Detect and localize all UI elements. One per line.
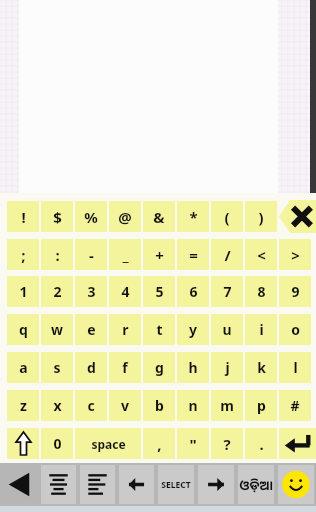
staticText: < <box>257 245 266 265</box>
button[interactable]: Enter <box>279 428 316 459</box>
staticText: b <box>155 396 164 415</box>
button[interactable]: < <box>245 239 277 270</box>
button[interactable]: q <box>7 314 39 345</box>
staticText: w <box>51 320 63 339</box>
button[interactable]: 7 <box>211 276 243 307</box>
button[interactable]: _ <box>109 239 141 270</box>
button[interactable]: c <box>75 390 107 421</box>
staticText: x <box>53 396 62 415</box>
button[interactable]: ଓଡ଼ିଆ <box>238 465 274 504</box>
button[interactable]: 0 <box>41 428 73 459</box>
button[interactable]: " <box>177 428 209 459</box>
button[interactable]: u <box>211 314 243 345</box>
button[interactable]: z <box>7 390 39 421</box>
button[interactable]: $ <box>41 201 73 232</box>
button[interactable]: w <box>41 314 73 345</box>
button[interactable]: + <box>143 239 175 270</box>
button[interactable]: b <box>143 390 175 421</box>
button[interactable]: = <box>177 239 209 270</box>
button[interactable]: f <box>109 352 141 383</box>
button[interactable]: - <box>75 239 107 270</box>
button[interactable]: / <box>211 239 243 270</box>
button[interactable]: 4 <box>109 276 141 307</box>
staticText: - <box>89 245 94 265</box>
button[interactable]: r <box>109 314 141 345</box>
button[interactable]: a <box>7 352 39 383</box>
button[interactable]: . <box>245 428 277 459</box>
button[interactable]: 8 <box>245 276 277 307</box>
staticText: s <box>53 358 61 377</box>
button[interactable]: 3 <box>75 276 107 307</box>
button[interactable]: * <box>177 201 209 232</box>
button[interactable]: SELECT <box>158 465 194 504</box>
button[interactable]: Emoji <box>278 465 314 504</box>
staticText: 1 <box>19 282 28 301</box>
button[interactable]: ! <box>7 201 39 232</box>
staticText: : <box>55 245 60 265</box>
staticText: " <box>189 434 197 454</box>
staticText: i <box>259 320 264 339</box>
staticText: n <box>188 396 198 415</box>
button[interactable]: t <box>143 314 175 345</box>
button[interactable]: : <box>41 239 73 270</box>
staticText: z <box>20 396 27 415</box>
button[interactable]: ? <box>211 428 243 459</box>
staticText: u <box>222 320 232 339</box>
staticText: 6 <box>189 282 198 301</box>
staticText: 3 <box>87 282 96 301</box>
button[interactable]: # <box>279 390 311 421</box>
staticText: l <box>293 358 298 377</box>
button[interactable]: Move left <box>119 465 154 504</box>
button[interactable]: x <box>41 390 73 421</box>
button[interactable]: Back <box>2 465 37 504</box>
staticText: = <box>189 245 198 265</box>
button[interactable]: % <box>75 201 107 232</box>
button[interactable]: l <box>279 352 311 383</box>
button[interactable]: m <box>211 390 243 421</box>
button[interactable]: Backspace <box>279 200 316 233</box>
button[interactable]: y <box>177 314 209 345</box>
staticText: e <box>87 320 96 339</box>
staticText: ? <box>223 434 231 454</box>
staticText: 0 <box>53 434 62 453</box>
button[interactable]: 1 <box>7 276 39 307</box>
staticText: ) <box>258 207 264 227</box>
button[interactable]: v <box>109 390 141 421</box>
button[interactable]: Align left <box>80 465 115 504</box>
button[interactable]: j <box>211 352 243 383</box>
button[interactable]: s <box>41 352 73 383</box>
button[interactable]: 2 <box>41 276 73 307</box>
button[interactable]: e <box>75 314 107 345</box>
button[interactable]: space <box>75 428 141 459</box>
staticText: a <box>19 358 28 377</box>
button[interactable]: Shift <box>7 428 39 459</box>
staticText: 9 <box>291 282 300 301</box>
button[interactable]: p <box>245 390 277 421</box>
button[interactable]: d <box>75 352 107 383</box>
button[interactable]: @ <box>109 201 141 232</box>
staticText: + <box>155 245 164 265</box>
button[interactable]: Align center <box>41 465 76 504</box>
button[interactable]: h <box>177 352 209 383</box>
staticText: j <box>225 358 230 377</box>
staticText: q <box>19 320 28 339</box>
button[interactable]: 5 <box>143 276 175 307</box>
button[interactable]: > <box>279 239 311 270</box>
button[interactable]: ; <box>7 239 39 270</box>
button[interactable]: 9 <box>279 276 311 307</box>
button[interactable]: Move right <box>198 465 234 504</box>
button[interactable]: i <box>245 314 277 345</box>
button[interactable]: ( <box>211 201 243 232</box>
button[interactable]: n <box>177 390 209 421</box>
button[interactable]: & <box>143 201 175 232</box>
button[interactable]: g <box>143 352 175 383</box>
button[interactable]: 6 <box>177 276 209 307</box>
staticText: & <box>153 207 165 227</box>
button[interactable]: ) <box>245 201 277 232</box>
staticText: 2 <box>53 282 62 301</box>
button[interactable]: , <box>143 428 175 459</box>
button[interactable]: k <box>245 352 277 383</box>
staticText: o <box>291 320 300 339</box>
button[interactable]: o <box>279 314 311 345</box>
staticText: * <box>189 207 198 227</box>
